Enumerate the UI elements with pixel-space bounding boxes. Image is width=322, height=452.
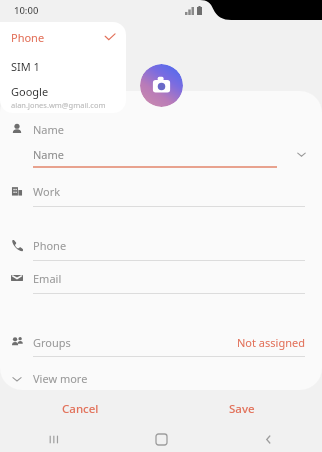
button[interactable]: Expand name (294, 147, 308, 161)
button[interactable]: Change photo (140, 64, 183, 107)
staticText: Cancel (62, 401, 99, 417)
button[interactable]: Phone (0, 230, 322, 261)
staticText: Name (33, 122, 65, 137)
staticText: alan.jones.wm@gmail.com (11, 100, 106, 110)
staticText: View more (33, 371, 88, 386)
staticText: Phone (11, 30, 104, 45)
staticText: Email (33, 271, 62, 286)
staticText: Groups (33, 335, 237, 350)
staticText: 10:00 (14, 4, 39, 17)
button[interactable]: Home (108, 426, 215, 452)
staticText: Phone (33, 238, 67, 253)
button[interactable]: Groups (0, 328, 322, 357)
button[interactable]: Google (0, 80, 126, 110)
staticText: Google (11, 84, 49, 99)
staticText: Work (33, 184, 61, 199)
button[interactable]: Name (0, 116, 322, 142)
button[interactable]: Save (161, 396, 322, 422)
button[interactable]: SIM 1 (0, 52, 126, 80)
button[interactable]: Name (0, 142, 322, 168)
button[interactable]: Email (0, 263, 322, 294)
button[interactable]: Back (215, 426, 322, 452)
button[interactable]: Phone (0, 22, 126, 52)
button[interactable]: Work (0, 176, 322, 207)
staticText: Save (229, 401, 255, 417)
staticText: Name (33, 147, 294, 162)
button[interactable]: Recents (0, 426, 108, 452)
button[interactable]: View more (0, 367, 322, 390)
button[interactable]: Cancel (0, 396, 161, 422)
staticText: Not assigned (237, 335, 305, 350)
staticText: SIM 1 (11, 59, 40, 74)
